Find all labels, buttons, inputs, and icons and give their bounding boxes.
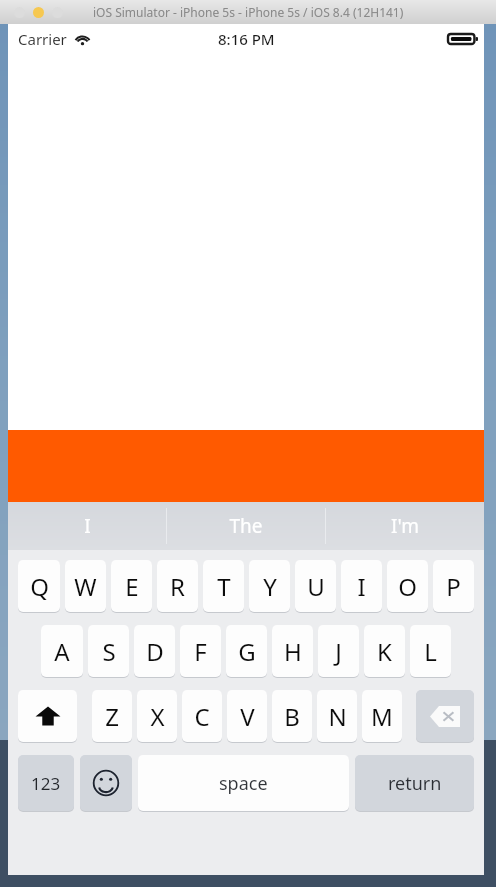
button[interactable]: Z: [92, 690, 132, 742]
button[interactable]: B: [272, 690, 312, 742]
button[interactable]: P: [433, 560, 474, 612]
button[interactable]: X: [137, 690, 177, 742]
staticText: V: [240, 700, 255, 733]
button[interactable]: space: [138, 755, 349, 811]
other: Emoji: [80, 755, 132, 811]
staticText: J: [335, 635, 342, 668]
staticText: The: [229, 513, 263, 539]
staticText: I: [84, 513, 91, 539]
staticText: space: [219, 771, 268, 796]
staticText: P: [446, 570, 461, 603]
staticText: F: [194, 635, 207, 668]
button[interactable]: I'm: [326, 502, 484, 550]
staticText: O: [398, 570, 417, 603]
staticText: D: [146, 635, 164, 668]
staticText: T: [217, 570, 231, 603]
staticText: N: [328, 700, 347, 733]
button[interactable]: U: [295, 560, 336, 612]
button[interactable]: F: [180, 625, 221, 677]
staticText: 123: [31, 772, 61, 795]
staticText: M: [371, 700, 393, 733]
button[interactable]: C: [182, 690, 222, 742]
button[interactable]: K: [364, 625, 405, 677]
button[interactable]: O: [387, 560, 428, 612]
staticText: iOS Simulator - iPhone 5s - iPhone 5s / …: [93, 4, 404, 20]
button[interactable]: W: [65, 560, 106, 612]
button[interactable]: 123: [18, 755, 74, 811]
staticText: U: [307, 570, 325, 603]
button[interactable]: [80, 755, 132, 811]
button[interactable]: [18, 690, 77, 742]
button[interactable]: T: [203, 560, 244, 612]
staticText: R: [170, 570, 185, 603]
other: Shift: [18, 690, 77, 742]
staticText: A: [54, 635, 70, 668]
button[interactable]: I: [341, 560, 382, 612]
staticText: I: [357, 570, 366, 603]
staticText: Y: [263, 570, 277, 603]
button[interactable]: G: [226, 625, 267, 677]
other: Backspace: [416, 690, 474, 742]
button[interactable]: A: [41, 625, 83, 677]
staticText: Carrier: [18, 29, 67, 49]
button[interactable]: M: [362, 690, 402, 742]
staticText: 8:16 PM: [218, 29, 275, 49]
button[interactable]: N: [317, 690, 357, 742]
staticText: C: [194, 700, 210, 733]
button[interactable]: L: [410, 625, 451, 677]
button[interactable]: E: [111, 560, 152, 612]
staticText: return: [388, 771, 442, 796]
button[interactable]: S: [88, 625, 129, 677]
button[interactable]: Minimize: [33, 7, 44, 18]
button[interactable]: H: [272, 625, 313, 677]
staticText: X: [150, 700, 165, 733]
staticText: W: [74, 570, 97, 603]
button[interactable]: I: [8, 502, 166, 550]
button[interactable]: V: [227, 690, 267, 742]
button[interactable]: J: [318, 625, 359, 677]
staticText: E: [125, 570, 139, 603]
button[interactable]: [416, 690, 474, 742]
button[interactable]: D: [134, 625, 175, 677]
button[interactable]: The: [167, 502, 325, 550]
button[interactable]: Q: [18, 560, 60, 612]
staticText: I'm: [391, 513, 419, 539]
button[interactable]: return: [355, 755, 474, 811]
staticText: B: [284, 700, 300, 733]
staticText: S: [102, 635, 116, 668]
staticText: G: [238, 635, 256, 668]
button[interactable]: Y: [249, 560, 290, 612]
staticText: L: [424, 635, 437, 668]
staticText: H: [284, 635, 302, 668]
staticText: Z: [105, 700, 119, 733]
button[interactable]: R: [157, 560, 198, 612]
staticText: Q: [30, 570, 49, 603]
staticText: K: [377, 635, 392, 668]
